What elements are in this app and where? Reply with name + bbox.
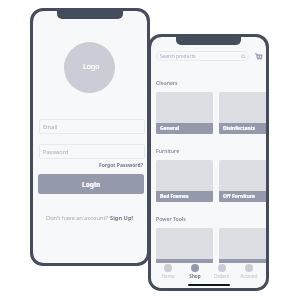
staticText: Don't have an account? [46, 214, 110, 222]
button[interactable]: Account [235, 264, 262, 279]
button[interactable]: Off Furniture [219, 160, 266, 202]
button[interactable]: Login [38, 174, 144, 194]
staticText: Off Furniture [223, 193, 255, 200]
staticText: General [160, 125, 180, 132]
button[interactable]: General [156, 92, 213, 134]
staticText: Disinfectants [223, 125, 256, 132]
button[interactable]: Email [39, 119, 145, 134]
staticText: Search products [160, 53, 196, 59]
button[interactable]: Forgot Password? [33, 161, 144, 169]
button[interactable]: Password [39, 144, 145, 159]
staticText: Home [161, 273, 175, 279]
button[interactable]: Home [155, 264, 181, 279]
staticText: Orders [214, 273, 229, 279]
staticText: Cleaners [156, 79, 178, 86]
staticText: Email [43, 123, 58, 131]
button[interactable] [156, 228, 213, 270]
button[interactable] [219, 228, 266, 270]
button[interactable]: Search products [156, 51, 249, 61]
staticText: Furniture [156, 147, 180, 154]
button[interactable]: Cart [254, 52, 263, 61]
button[interactable]: Disinfectants [219, 92, 266, 134]
staticText: Logo [83, 62, 100, 72]
button[interactable]: Orders [208, 264, 235, 279]
staticText: Bed Frames [160, 193, 189, 200]
staticText: Forgot Password? [99, 162, 144, 169]
staticText: Account [240, 273, 258, 279]
button[interactable]: Shop [181, 264, 208, 279]
staticText: Password [43, 148, 69, 156]
button[interactable]: Sign Up! [110, 214, 134, 222]
button[interactable]: Bed Frames [156, 160, 213, 202]
staticText: Login [82, 180, 101, 189]
staticText: Shop [189, 273, 201, 279]
staticText: Power Tools [156, 215, 186, 222]
